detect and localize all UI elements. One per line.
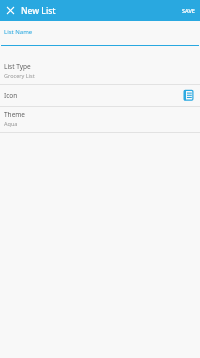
staticText: SAVE xyxy=(182,7,195,14)
button[interactable]: List Name xyxy=(0,25,200,46)
button[interactable]: Icon xyxy=(0,85,200,106)
staticText: Grocery List xyxy=(4,72,35,79)
button[interactable]: Close xyxy=(2,2,19,19)
staticText: List Name xyxy=(4,28,33,36)
staticText: Aqua xyxy=(4,120,18,127)
staticText: Theme xyxy=(4,110,26,119)
staticText: Icon xyxy=(4,91,18,100)
staticText: New List xyxy=(21,5,56,17)
button[interactable]: SAVE xyxy=(177,3,200,18)
staticText: List Type xyxy=(4,62,31,71)
other: List icon xyxy=(182,89,195,102)
button[interactable]: List Type xyxy=(0,59,200,84)
button[interactable]: Theme xyxy=(0,107,200,132)
